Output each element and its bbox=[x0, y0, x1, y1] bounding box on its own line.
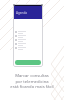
button[interactable] bbox=[13, 42, 43, 46]
button[interactable] bbox=[13, 34, 43, 38]
staticText: Marcar consultas por telemedicina está f… bbox=[6, 73, 58, 89]
button[interactable] bbox=[13, 38, 43, 42]
staticText: Agenda bbox=[16, 11, 28, 15]
button[interactable] bbox=[13, 30, 43, 34]
button[interactable] bbox=[13, 46, 43, 50]
button[interactable] bbox=[15, 60, 41, 65]
